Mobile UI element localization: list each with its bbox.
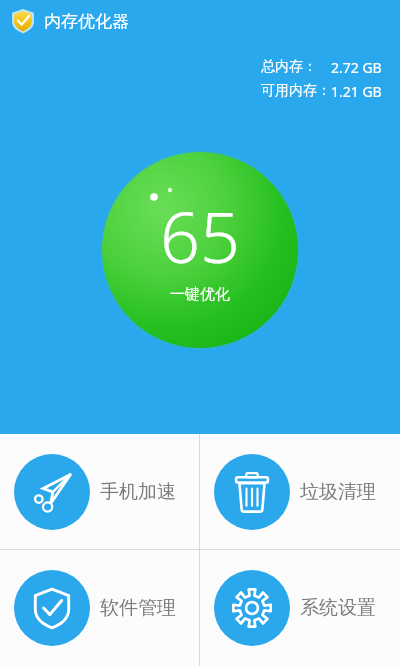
staticText: 1.21 GB <box>331 82 382 101</box>
staticText: 一键优化 <box>170 285 230 304</box>
staticText: 系统设置 <box>300 596 376 620</box>
staticText: 垃圾清理 <box>300 480 376 504</box>
button[interactable]: 内存优化器 <box>10 8 129 34</box>
button[interactable]: 垃圾清理 <box>200 434 400 549</box>
button[interactable]: 软件管理 <box>0 550 199 666</box>
button[interactable]: 一键优化 <box>100 150 300 350</box>
staticText: 总内存： <box>261 58 317 76</box>
staticText: 65 <box>160 188 240 283</box>
button[interactable]: 手机加速 <box>0 434 199 549</box>
staticText: 软件管理 <box>100 596 176 620</box>
staticText: 可用内存： <box>261 82 331 100</box>
button[interactable]: 系统设置 <box>200 550 400 666</box>
staticText: 内存优化器 <box>44 11 129 32</box>
staticText: 2.72 GB <box>331 58 382 77</box>
staticText: 手机加速 <box>100 480 176 504</box>
